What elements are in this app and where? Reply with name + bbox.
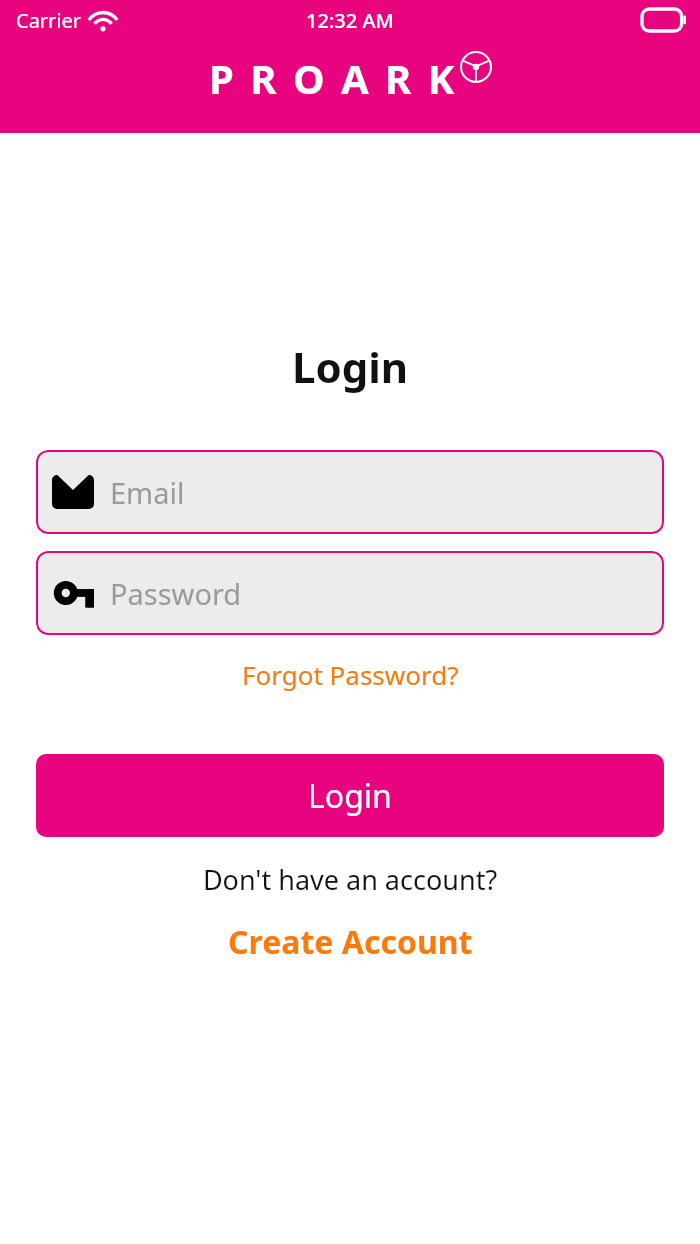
staticText: Login: [308, 774, 392, 818]
staticText: Forgot Password?: [242, 657, 459, 692]
button[interactable]: Password: [36, 551, 664, 635]
staticText: Login: [0, 338, 700, 395]
other: Password: [52, 578, 94, 608]
staticText: 12:32 AM: [306, 7, 394, 34]
button[interactable]: Forgot Password?: [0, 657, 700, 692]
button[interactable]: Email: [36, 450, 664, 534]
button[interactable]: Create Account: [0, 920, 700, 964]
staticText: P R O A R K: [209, 51, 458, 105]
staticText: Create Account: [228, 920, 473, 964]
other: ProArk: [460, 51, 492, 83]
staticText: Email: [110, 473, 185, 512]
staticText: Don't have an account?: [0, 861, 700, 898]
button[interactable]: Login: [36, 754, 664, 837]
staticText: Carrier: [16, 7, 82, 34]
other: Email: [52, 475, 94, 509]
staticText: Password: [110, 574, 242, 613]
